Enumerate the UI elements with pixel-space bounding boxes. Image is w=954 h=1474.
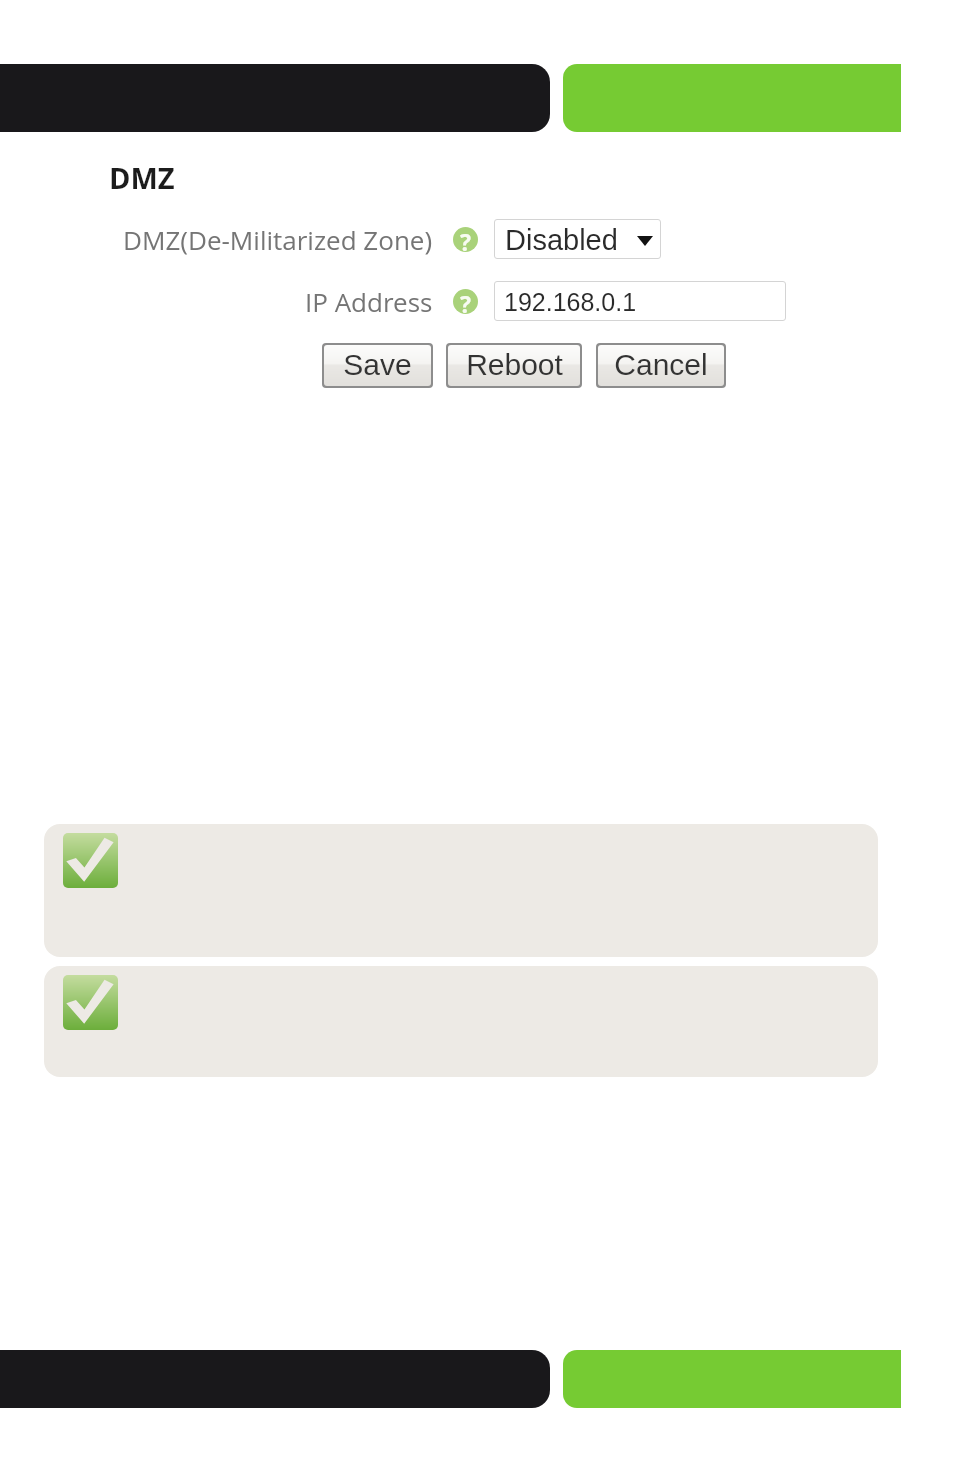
button[interactable]: Router rebooted [44,966,878,1077]
button[interactable]: DMZ setting saved [44,824,878,957]
button[interactable]: Footer status [563,1350,901,1408]
staticText: ? [460,288,471,313]
button[interactable]: Navigation menu [0,64,550,132]
other: Enabled [63,833,118,888]
button[interactable]: Save [324,345,431,386]
staticText: Cancel [614,348,708,382]
staticText: ? [460,226,471,251]
staticText: DMZ [109,158,175,197]
staticText: DMZ(De-Militarized Zone) [123,222,433,257]
button[interactable]: 192.168.0.1 [494,281,786,321]
staticText: 192.168.0.1 [504,288,637,316]
staticText: Save [343,348,412,382]
button[interactable]: Help [453,289,478,314]
button[interactable]: Disabled [494,219,661,259]
button[interactable]: Reboot [448,345,580,386]
button[interactable]: Status [563,64,901,132]
other: Enabled [63,975,118,1030]
button[interactable]: Help [453,227,478,252]
staticText: Reboot [466,348,563,382]
button[interactable]: Cancel [598,345,724,386]
staticText: IP Address [305,284,433,319]
button[interactable]: Footer navigation [0,1350,550,1408]
staticText: Disabled [505,224,618,256]
